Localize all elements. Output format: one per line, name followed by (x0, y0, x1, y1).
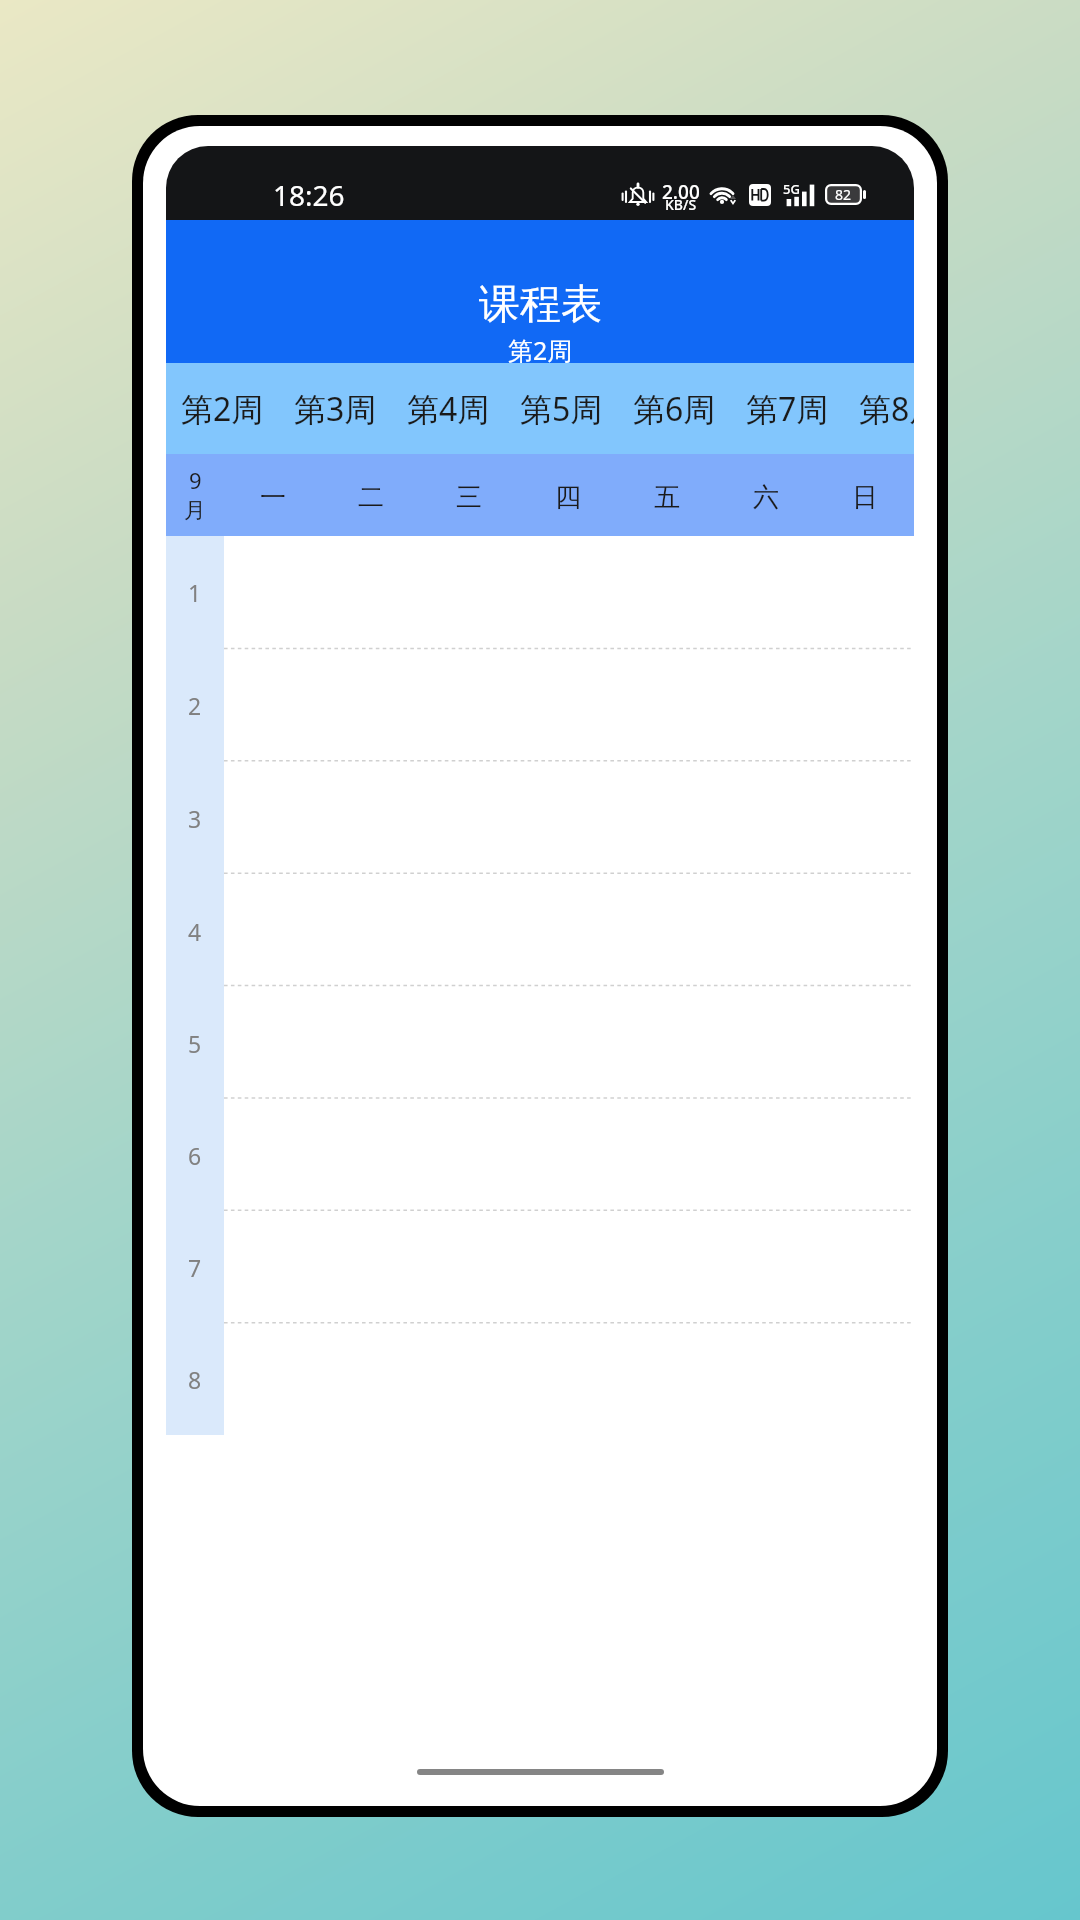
button[interactable]: 课程表 (166, 220, 914, 363)
button[interactable]: 第8周 (844, 363, 914, 454)
button[interactable]: 第3周 (279, 363, 392, 454)
button[interactable]: 7 (166, 1211, 224, 1323)
other: HD voice (749, 184, 771, 206)
button[interactable]: Add course, day 6 period 1 (716, 536, 815, 649)
button[interactable]: Add course, day 4 period 3 (518, 762, 617, 875)
button[interactable]: Add course, day 7 period 2 (815, 649, 914, 762)
button[interactable]: Add course, day 5 period 6 (617, 1099, 716, 1211)
button[interactable]: 日 (815, 454, 914, 536)
button[interactable]: Add course, day 2 period 3 (322, 762, 420, 875)
staticText: 6 (188, 1140, 202, 1171)
staticText: 二 (358, 481, 384, 514)
button[interactable]: Add course, day 4 period 4 (518, 875, 617, 987)
staticText: 第5周 (520, 387, 603, 431)
button[interactable]: Add course, day 7 period 5 (815, 987, 914, 1099)
button[interactable]: Add course, day 4 period 1 (518, 536, 617, 649)
button[interactable]: Add course, day 3 period 4 (420, 875, 518, 987)
staticText: 月 (184, 497, 206, 525)
button[interactable]: Add course, day 2 period 2 (322, 649, 420, 762)
button[interactable]: Add course, day 3 period 2 (420, 649, 518, 762)
button[interactable]: 第5周 (505, 363, 618, 454)
button[interactable]: 四 (518, 454, 617, 536)
button[interactable]: 1 (166, 536, 224, 649)
staticText: 9 (189, 465, 202, 495)
button[interactable]: 三 (420, 454, 518, 536)
button[interactable]: 3 (166, 762, 224, 875)
button[interactable]: 五 (617, 454, 716, 536)
staticText: 第2周 (181, 387, 264, 431)
button[interactable]: Add course, day 3 period 5 (420, 987, 518, 1099)
staticText: 2 (188, 690, 202, 721)
button[interactable]: Add course, day 2 period 6 (322, 1099, 420, 1211)
button[interactable]: 一 (224, 454, 322, 536)
button[interactable]: Add course, day 6 period 3 (716, 762, 815, 875)
button[interactable]: Add course, day 1 period 7 (224, 1211, 322, 1323)
button[interactable]: Add course, day 1 period 5 (224, 987, 322, 1099)
button[interactable]: Add course, day 2 period 5 (322, 987, 420, 1099)
button[interactable]: 6 (166, 1099, 224, 1211)
button[interactable]: Add course, day 2 period 1 (322, 536, 420, 649)
button[interactable]: 第7周 (731, 363, 844, 454)
button[interactable]: 5 (166, 987, 224, 1099)
button[interactable]: Add course, day 1 period 4 (224, 875, 322, 987)
button[interactable]: Add course, day 3 period 6 (420, 1099, 518, 1211)
button[interactable]: 2 (166, 649, 224, 762)
button[interactable]: Add course, day 2 period 4 (322, 875, 420, 987)
other: Battery 82 percent (825, 184, 866, 205)
button[interactable]: Add course, day 5 period 2 (617, 649, 716, 762)
staticText: 5 (188, 1028, 202, 1059)
staticText: 第4周 (407, 387, 490, 431)
button[interactable]: Add course, day 1 period 3 (224, 762, 322, 875)
staticText: 7 (188, 1252, 202, 1283)
button[interactable]: 第2周 (166, 363, 279, 454)
button[interactable]: Add course, day 1 period 6 (224, 1099, 322, 1211)
button[interactable]: Add course, day 3 period 1 (420, 536, 518, 649)
button[interactable]: Add course, day 6 period 7 (716, 1211, 815, 1323)
button[interactable]: Add course, day 5 period 1 (617, 536, 716, 649)
button[interactable]: Add course, day 4 period 2 (518, 649, 617, 762)
button[interactable]: 第4周 (392, 363, 505, 454)
button[interactable]: Add course, day 4 period 5 (518, 987, 617, 1099)
staticText: 四 (555, 481, 581, 514)
button[interactable]: Add course, day 3 period 7 (420, 1211, 518, 1323)
button[interactable]: Add course, day 6 period 5 (716, 987, 815, 1099)
button[interactable]: Add course, day 5 period 4 (617, 875, 716, 987)
button[interactable]: Add course, day 7 period 1 (815, 536, 914, 649)
button[interactable]: Add course, day 6 period 4 (716, 875, 815, 987)
staticText: 第3周 (294, 387, 377, 431)
button[interactable]: Add course, day 7 period 3 (815, 762, 914, 875)
button[interactable]: 第6周 (618, 363, 731, 454)
button[interactable]: Add course, day 5 period 5 (617, 987, 716, 1099)
other: Wi-Fi connected (710, 180, 740, 208)
button[interactable]: 4 (166, 875, 224, 987)
button[interactable]: 二 (322, 454, 420, 536)
button[interactable]: Add course, day 5 period 3 (617, 762, 716, 875)
button[interactable]: 8 (166, 1323, 224, 1435)
staticText: 一 (260, 481, 286, 514)
button[interactable]: Add course, day 1 period 2 (224, 649, 322, 762)
button[interactable]: Add course, day 7 period 4 (815, 875, 914, 987)
button[interactable]: Add course, day 7 period 6 (815, 1099, 914, 1211)
button[interactable]: Add course, day 1 period 1 (224, 536, 322, 649)
button[interactable]: Add course, day 4 period 7 (518, 1211, 617, 1323)
button[interactable]: Add course, day 5 period 7 (617, 1211, 716, 1323)
button[interactable]: Add course, day 7 period 7 (815, 1211, 914, 1323)
staticText: 第2周 (508, 333, 573, 367)
button[interactable]: 六 (716, 454, 815, 536)
staticText: 第6周 (633, 387, 716, 431)
button[interactable]: Add course, day 4 period 6 (518, 1099, 617, 1211)
staticText: 课程表 (479, 279, 602, 331)
button[interactable]: Add course, day 6 period 6 (716, 1099, 815, 1211)
button[interactable]: Add course, day 3 period 3 (420, 762, 518, 875)
staticText: 8 (188, 1364, 202, 1395)
button[interactable]: Add course, day 6 period 2 (716, 649, 815, 762)
button[interactable]: Add course, day 2 period 7 (322, 1211, 420, 1323)
other: 5G signal strength (783, 180, 815, 208)
